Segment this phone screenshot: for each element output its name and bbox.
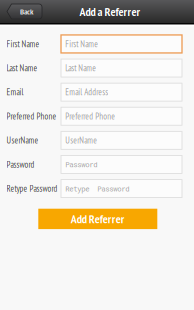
button[interactable]: Retype Password [0,176,194,201]
button[interactable]: Add Referrer [38,209,157,229]
staticText: UserName [65,135,97,146]
staticText: Password [65,160,97,169]
staticText: Last Name [65,62,96,74]
staticText: Add Referrer [71,211,125,227]
staticText: Retype Password [6,183,57,194]
button[interactable]: UserName [0,128,194,152]
staticText: Add a Referrer [79,4,140,19]
button[interactable]: Password [0,152,194,176]
button[interactable]: First Name [0,32,194,56]
staticText: Preferred Phone [6,111,56,122]
staticText: First Name [65,38,98,49]
button[interactable]: Email [0,80,194,104]
staticText: Email [6,86,23,98]
staticText: UserName [6,135,38,146]
staticText: Password [6,159,34,170]
button[interactable]: Back [7,4,42,19]
staticText: Preferred Phone [65,111,115,122]
staticText: First Name [6,38,39,49]
staticText: Last Name [6,62,37,74]
button[interactable]: Last Name [0,56,194,80]
staticText: Email Address [65,86,108,98]
staticText: Retype Password [65,184,129,193]
staticText: Back [20,6,33,17]
button[interactable]: Preferred Phone [0,104,194,128]
